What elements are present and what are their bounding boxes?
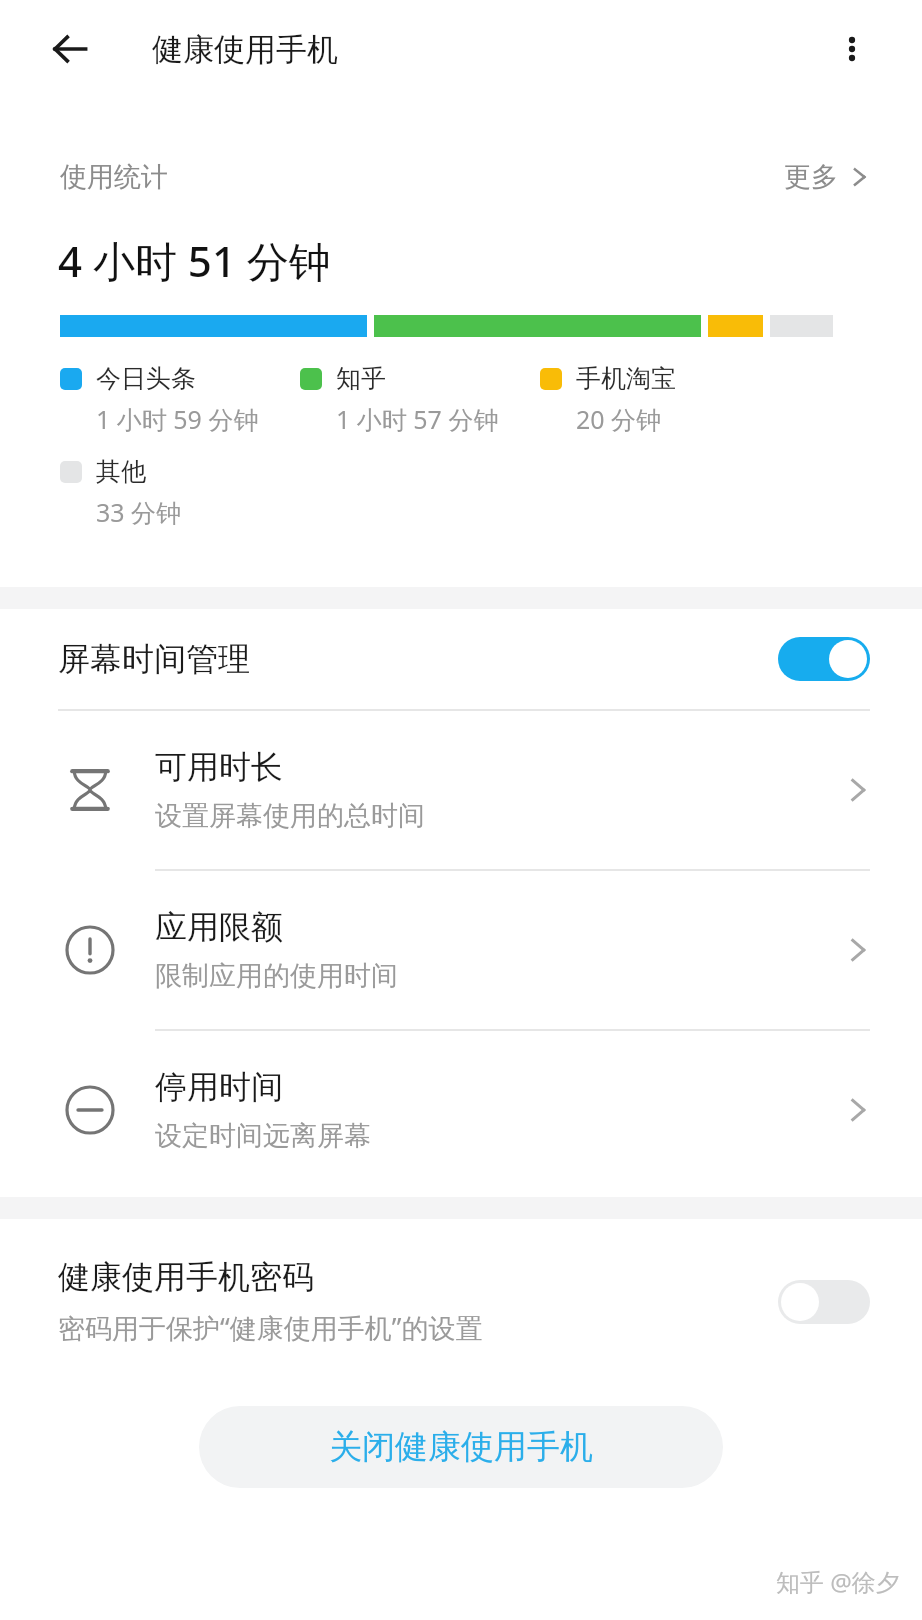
button[interactable]: 关闭健康使用手机 bbox=[199, 1406, 723, 1488]
staticText: 知乎 @徐夕 bbox=[776, 1565, 900, 1598]
button[interactable]: 使用统计 bbox=[0, 98, 922, 204]
staticText: 知乎 bbox=[336, 363, 386, 394]
staticText: 关闭健康使用手机 bbox=[329, 1426, 593, 1468]
staticText: 限制应用的使用时间 bbox=[155, 959, 398, 993]
staticText: 设定时间远离屏幕 bbox=[155, 1119, 371, 1153]
staticText: 20 分钟 bbox=[576, 402, 662, 436]
staticText: 1 小时 59 分钟 bbox=[96, 402, 259, 436]
staticText: 更多 bbox=[784, 160, 838, 194]
staticText: 4 小时 51 分钟 bbox=[58, 232, 331, 289]
button[interactable]: 停用时间 bbox=[0, 1031, 922, 1189]
button[interactable]: 健康使用手机密码 bbox=[0, 1219, 922, 1362]
staticText: 今日头条 bbox=[96, 363, 196, 394]
button[interactable]: 可用时长 bbox=[0, 711, 922, 869]
button[interactable]: 健康使用手机密码 开关 bbox=[778, 1280, 870, 1324]
staticText: 屏幕时间管理 bbox=[58, 639, 250, 679]
staticText: 设置屏幕使用的总时间 bbox=[155, 799, 425, 833]
staticText: 其他 bbox=[96, 456, 146, 487]
staticText: 健康使用手机 bbox=[152, 30, 338, 69]
staticText: 手机淘宝 bbox=[576, 363, 676, 394]
staticText: 健康使用手机密码 bbox=[58, 1257, 314, 1297]
staticText: 1 小时 57 分钟 bbox=[336, 402, 499, 436]
staticText: 可用时长 bbox=[155, 747, 283, 787]
staticText: 使用统计 bbox=[60, 160, 168, 194]
button[interactable]: 屏幕时间管理 bbox=[0, 609, 922, 709]
staticText: 密码用于保护“健康使用手机”的设置 bbox=[58, 1309, 483, 1346]
button[interactable]: 应用限额 bbox=[0, 871, 922, 1029]
button[interactable]: Back bbox=[42, 21, 98, 77]
button[interactable]: More options bbox=[824, 21, 880, 77]
staticText: 33 分钟 bbox=[96, 495, 182, 529]
staticText: 应用限额 bbox=[155, 907, 283, 947]
staticText: 停用时间 bbox=[155, 1067, 283, 1107]
button[interactable]: 屏幕时间管理 开关 bbox=[778, 637, 870, 681]
